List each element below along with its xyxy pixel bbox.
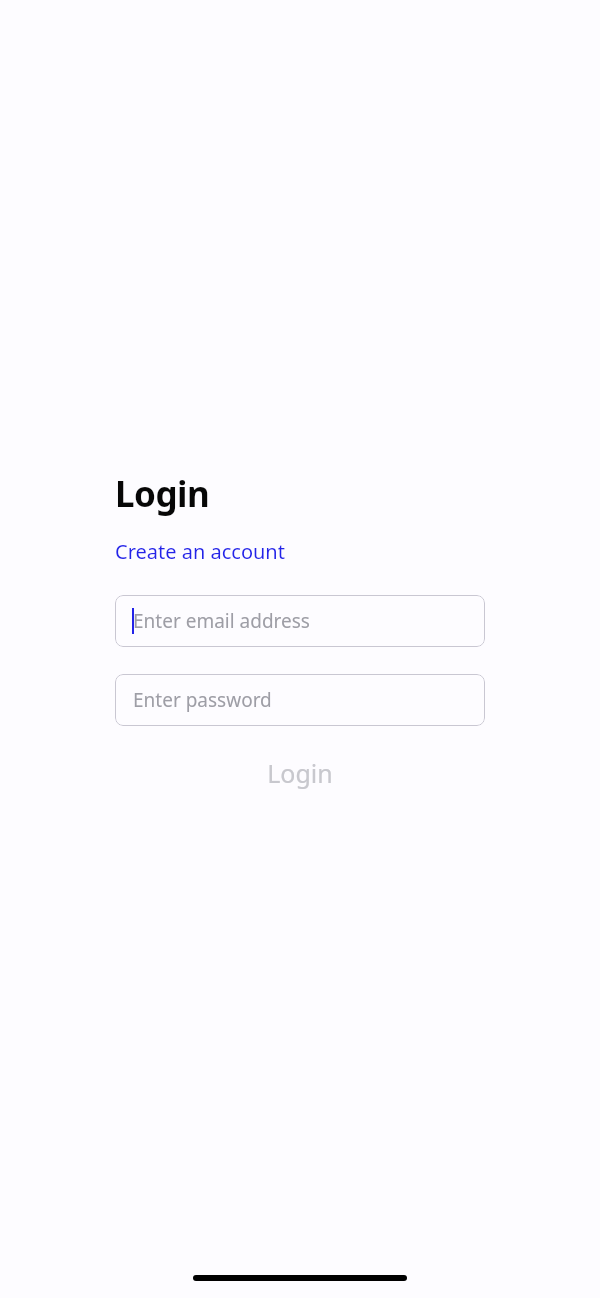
- staticText: Login: [115, 470, 210, 518]
- button[interactable]: Enter password: [115, 674, 485, 726]
- staticText: Enter password: [133, 687, 272, 713]
- button[interactable]: Login: [115, 748, 485, 798]
- button[interactable]: Enter email address: [115, 595, 485, 647]
- button[interactable]: Create an account: [115, 538, 285, 565]
- staticText: Login: [267, 756, 333, 790]
- staticText: Create an account: [115, 538, 285, 565]
- staticText: Enter email address: [133, 608, 310, 634]
